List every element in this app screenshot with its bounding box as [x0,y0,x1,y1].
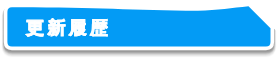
staticText: 更新履歴 [26,17,112,39]
button[interactable]: 更新履歴 [0,0,280,64]
staticText: 更新履歴 [26,17,112,39]
